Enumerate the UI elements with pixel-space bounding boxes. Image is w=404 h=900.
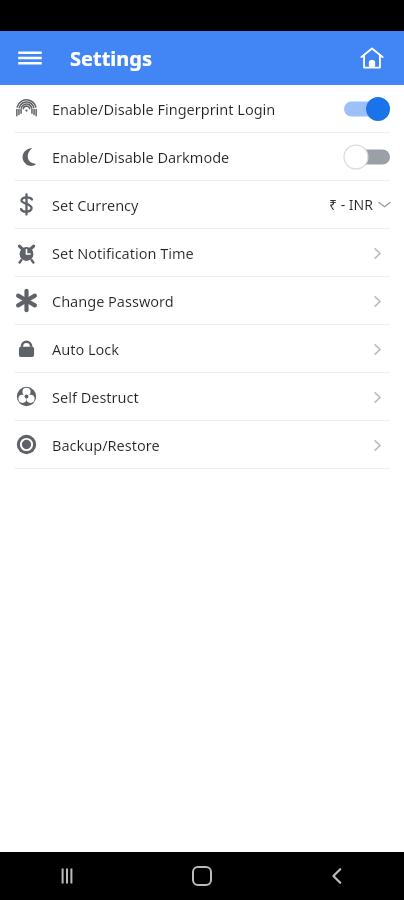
button[interactable]: Back xyxy=(269,852,404,900)
staticText: Settings xyxy=(70,45,152,72)
button[interactable]: Open navigation menu xyxy=(10,38,50,78)
staticText: ₹ - INR xyxy=(329,195,373,214)
staticText: Set Currency xyxy=(52,195,329,215)
button[interactable]: Auto Lock xyxy=(0,325,404,372)
staticText: Set Notification Time xyxy=(52,243,364,263)
button[interactable]: Open xyxy=(364,240,390,266)
staticText: Backup/Restore xyxy=(52,435,364,455)
button[interactable]: Home xyxy=(134,852,269,900)
button[interactable]: Enable/Disable Darkmode xyxy=(0,133,404,180)
button[interactable]: Open xyxy=(364,288,390,314)
button[interactable]: Self Destruct xyxy=(0,373,404,420)
staticText: Enable/Disable Fingerprint Login xyxy=(52,99,344,119)
staticText: Self Destruct xyxy=(52,387,364,407)
button[interactable]: Home xyxy=(352,38,392,78)
button[interactable]: Open xyxy=(364,336,390,362)
staticText: Change Password xyxy=(52,291,364,311)
staticText: Enable/Disable Darkmode xyxy=(52,147,344,167)
button[interactable]: Toggle off xyxy=(344,144,390,170)
staticText: Auto Lock xyxy=(52,339,364,359)
button[interactable]: Enable/Disable Fingerprint Login xyxy=(0,85,404,132)
button[interactable]: Change Password xyxy=(0,277,404,324)
button[interactable]: Recent apps xyxy=(0,852,134,900)
button[interactable]: Open xyxy=(364,384,390,410)
button[interactable]: Set Currency xyxy=(0,181,404,228)
button[interactable]: Toggle on xyxy=(344,96,390,122)
button[interactable]: Set Notification Time xyxy=(0,229,404,276)
button[interactable]: Open xyxy=(364,432,390,458)
button[interactable]: Backup/Restore xyxy=(0,421,404,468)
button[interactable]: ₹ - INR xyxy=(329,195,390,214)
